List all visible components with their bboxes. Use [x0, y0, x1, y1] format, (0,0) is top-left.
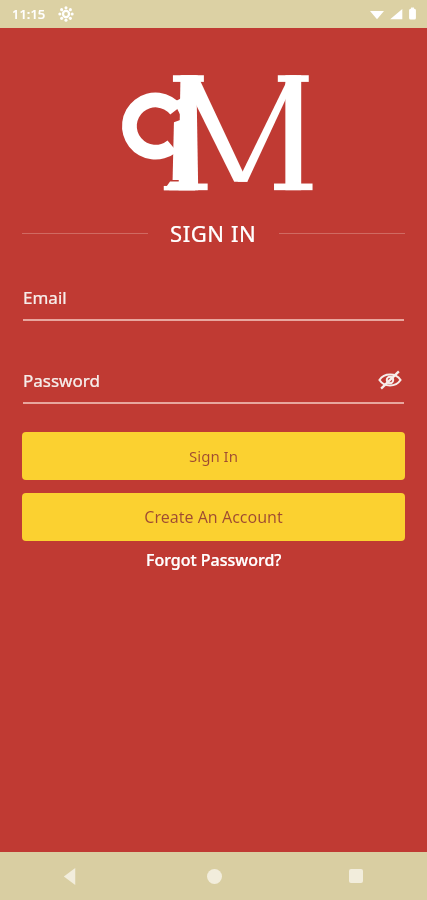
button[interactable]: Home — [143, 852, 285, 900]
button[interactable]: Back — [0, 852, 143, 900]
button[interactable]: Sign In — [22, 432, 405, 480]
staticText: Create An Account — [144, 506, 283, 528]
button[interactable]: Forgot Password? — [0, 549, 427, 571]
staticText: Password — [23, 369, 376, 392]
staticText: Email — [23, 286, 404, 309]
button[interactable]: Email — [23, 282, 404, 321]
button[interactable]: Recent apps — [285, 852, 427, 900]
button[interactable]: Create An Account — [22, 493, 405, 541]
button[interactable]: Password — [23, 365, 404, 404]
staticText: Forgot Password? — [146, 549, 282, 571]
staticText: 11:15 — [12, 5, 46, 23]
staticText: SIGN IN — [170, 218, 257, 248]
staticText: Sign In — [189, 446, 238, 466]
button[interactable]: Show password — [376, 366, 404, 394]
